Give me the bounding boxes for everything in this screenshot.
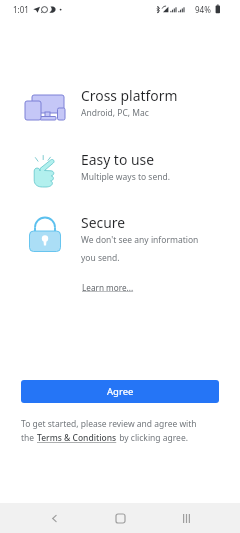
staticText: Multiple ways to send. [81,171,170,183]
staticText: Learn more... [82,282,134,293]
button[interactable]: Learn more... [81,281,135,294]
staticText: We don't see any information [81,234,199,246]
staticText: 1:01 [13,4,29,15]
staticText: by clicking agree. [117,432,188,444]
staticText: Secure [81,213,126,232]
staticText: Agree [107,385,134,398]
staticText: the [21,432,37,444]
staticText: Cross platform [81,86,178,105]
button[interactable]: Agree [21,380,219,403]
staticText: 94% [195,4,211,15]
staticText: Terms & Conditions [37,432,117,444]
staticText: To get started, please review and agree … [21,418,197,430]
staticText: Android, PC, Mac [81,107,149,119]
staticText: Easy to use [81,150,154,169]
button[interactable]: Recent apps [169,503,203,533]
staticText: you send. [81,252,120,264]
button[interactable]: Terms & Conditions [37,432,117,444]
button[interactable]: Home [103,503,137,533]
button[interactable]: Back [37,503,71,533]
